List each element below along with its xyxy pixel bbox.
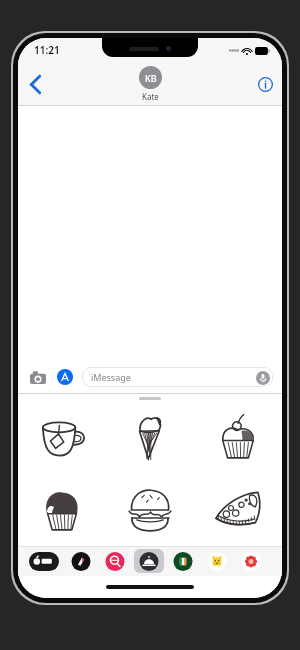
button[interactable]: Ice cream cone sticker [106, 402, 194, 474]
staticText: KB [145, 72, 157, 84]
button[interactable]: Music app [66, 549, 96, 573]
staticText: 11:21 [34, 43, 60, 57]
button[interactable]: Burger sticker [106, 474, 194, 546]
button[interactable]: Food stickers [134, 549, 164, 573]
button[interactable]: iMessage [82, 367, 273, 387]
button[interactable]: App Store [55, 367, 75, 387]
staticText: Kate [142, 91, 159, 102]
button[interactable]: Back [18, 64, 52, 104]
button[interactable]: Red stickers [236, 549, 266, 573]
button[interactable]: Chocolate cupcake sticker [18, 474, 106, 546]
button[interactable]: Yellow bear stickers [202, 549, 232, 573]
button[interactable]: Tea cup sticker [18, 402, 106, 474]
button[interactable]: Cupcake with cherry sticker [194, 402, 282, 474]
button[interactable]: KB [139, 66, 162, 102]
button[interactable]: Details [248, 64, 282, 104]
button[interactable]: Dictate [255, 370, 270, 385]
button[interactable]: Camera [27, 366, 49, 388]
button[interactable]: Pizza slice sticker [194, 474, 282, 546]
staticText: iMessage [91, 371, 131, 383]
button[interactable]: Apple Pay [26, 549, 62, 573]
button[interactable]: Images app [100, 549, 130, 573]
button[interactable]: Green app [168, 549, 198, 573]
